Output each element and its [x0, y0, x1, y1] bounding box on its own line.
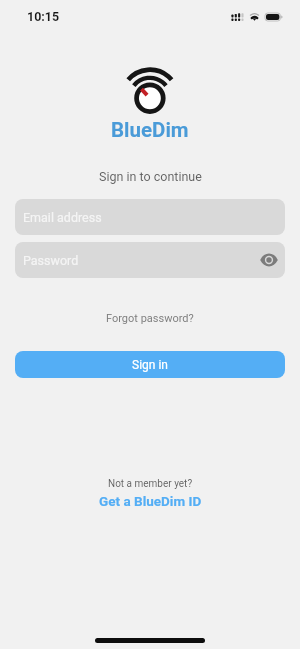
button[interactable]: Email address: [15, 199, 285, 235]
staticText: Password: [23, 253, 79, 268]
staticText: Forgot password?: [106, 312, 194, 325]
staticText: Sign in: [132, 358, 168, 372]
button[interactable]: Password: [15, 242, 285, 278]
button[interactable]: Forgot password?: [106, 312, 194, 325]
button[interactable]: Sign in: [15, 351, 285, 378]
button[interactable]: Get a BlueDim ID: [99, 493, 202, 509]
staticText: Not a member yet?: [108, 478, 193, 490]
staticText: BlueDim: [111, 118, 189, 142]
staticText: 10:15: [27, 9, 60, 24]
staticText: Get a BlueDim ID: [99, 493, 202, 509]
button[interactable]: Show password: [255, 246, 283, 274]
staticText: Sign in to continue: [99, 169, 202, 184]
staticText: Email address: [23, 210, 102, 225]
